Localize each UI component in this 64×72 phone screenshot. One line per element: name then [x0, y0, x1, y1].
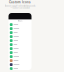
staticText: Give every app a fresh new look in secon… [4, 5, 35, 7]
button[interactable] [8, 55, 31, 59]
button[interactable] [8, 39, 31, 43]
button[interactable] [8, 59, 31, 63]
staticText: Custom Icons [9, 0, 31, 4]
button[interactable] [8, 31, 31, 35]
button[interactable] [8, 27, 31, 31]
button[interactable] [8, 51, 31, 55]
button[interactable] [8, 43, 31, 47]
button[interactable] [8, 63, 31, 67]
button[interactable] [8, 23, 31, 27]
button[interactable] [8, 47, 31, 51]
staticText: All Apps [17, 20, 22, 22]
button[interactable] [8, 67, 31, 71]
button[interactable] [8, 35, 31, 39]
staticText: — no shortcuts needed. [10, 7, 29, 9]
